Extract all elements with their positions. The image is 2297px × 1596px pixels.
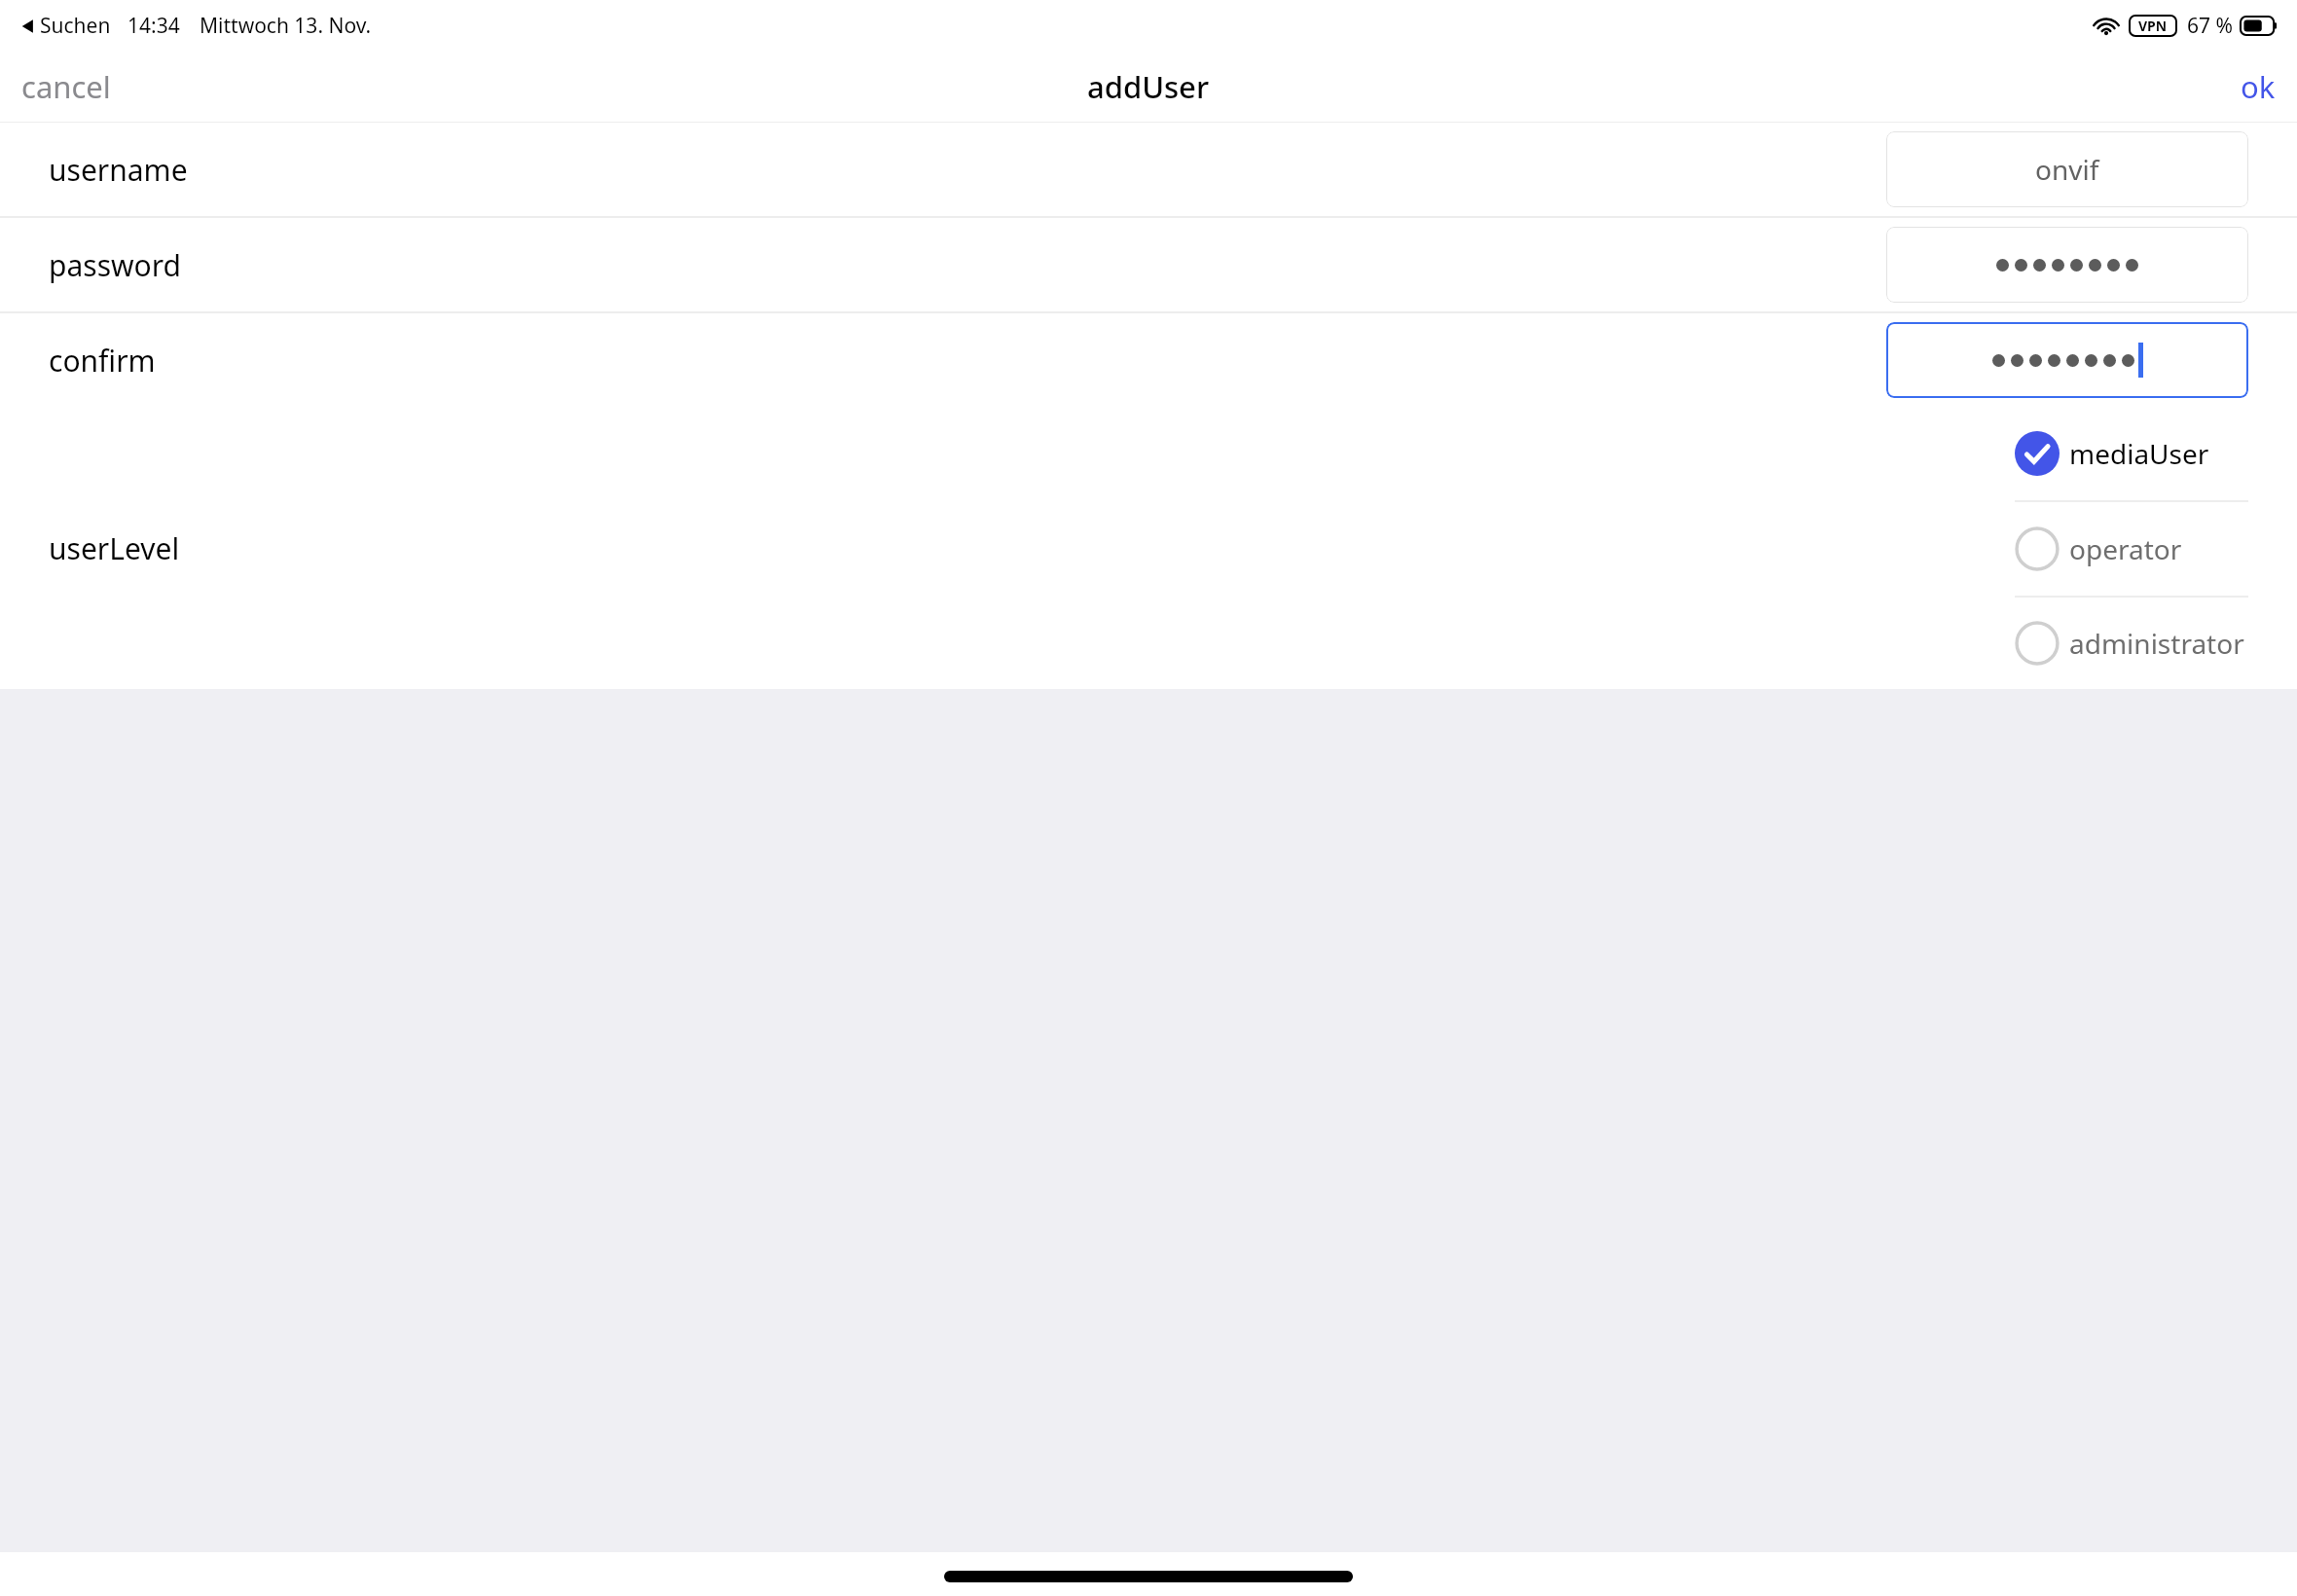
staticText: onvif	[2035, 151, 2099, 188]
staticText: cancel	[21, 66, 111, 107]
staticText: mediaUser	[2069, 435, 2209, 472]
staticText: VPN	[2138, 17, 2168, 35]
staticText: confirm	[49, 341, 156, 381]
button[interactable]: onvif	[1886, 131, 2248, 207]
button[interactable]: mediaUser	[2015, 407, 2248, 500]
button[interactable]: ok	[2219, 56, 2297, 117]
staticText: Suchen	[40, 12, 111, 40]
button[interactable]	[1886, 322, 2248, 398]
staticText: username	[49, 150, 188, 190]
staticText: userLevel	[49, 528, 180, 568]
button[interactable]: confirm	[0, 313, 2297, 407]
staticText: operator	[2069, 530, 2182, 567]
other: Home indicator	[944, 1571, 1353, 1582]
button[interactable]: password	[0, 218, 2297, 311]
staticText: ok	[2241, 66, 2276, 107]
button[interactable]: operator	[2015, 502, 2248, 596]
staticText: Mittwoch 13. Nov.	[200, 12, 372, 40]
staticText: administrator	[2069, 625, 2244, 662]
button[interactable]: administrator	[2015, 598, 2248, 689]
staticText: 14:34	[128, 12, 180, 40]
staticText: addUser	[1087, 66, 1210, 107]
button[interactable]: username	[0, 123, 2297, 216]
staticText: 67 %	[2187, 12, 2233, 40]
button[interactable]	[1886, 227, 2248, 303]
button[interactable]: cancel	[0, 56, 132, 117]
staticText: password	[49, 245, 181, 285]
